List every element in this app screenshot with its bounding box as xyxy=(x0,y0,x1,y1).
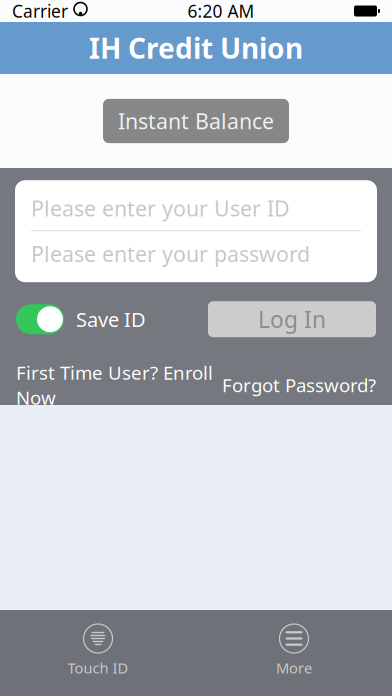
button[interactable]: Instant Balance xyxy=(103,99,289,143)
staticText: First Time User? Enroll Now xyxy=(16,360,213,410)
button[interactable]: Forgot Password? xyxy=(222,373,376,397)
button[interactable]: Log In xyxy=(208,301,376,337)
staticText: Please enter your User ID xyxy=(31,194,290,222)
button[interactable]: First Time User? Enroll Now xyxy=(16,360,213,410)
staticText: More xyxy=(276,658,312,677)
staticText: Instant Balance xyxy=(118,107,274,135)
staticText: Save ID xyxy=(76,306,146,332)
staticText: Log In xyxy=(258,304,326,334)
staticText: Please enter your password xyxy=(31,239,310,268)
staticText: 6:20 AM xyxy=(187,0,254,22)
button[interactable]: Save ID xyxy=(16,304,146,334)
button[interactable]: Touch ID xyxy=(38,624,158,677)
staticText: Carrier xyxy=(12,0,68,22)
staticText: Touch ID xyxy=(67,658,128,677)
button[interactable]: More xyxy=(234,624,354,677)
staticText: Forgot Password? xyxy=(222,373,376,397)
staticText: IH Credit Union xyxy=(89,29,303,67)
